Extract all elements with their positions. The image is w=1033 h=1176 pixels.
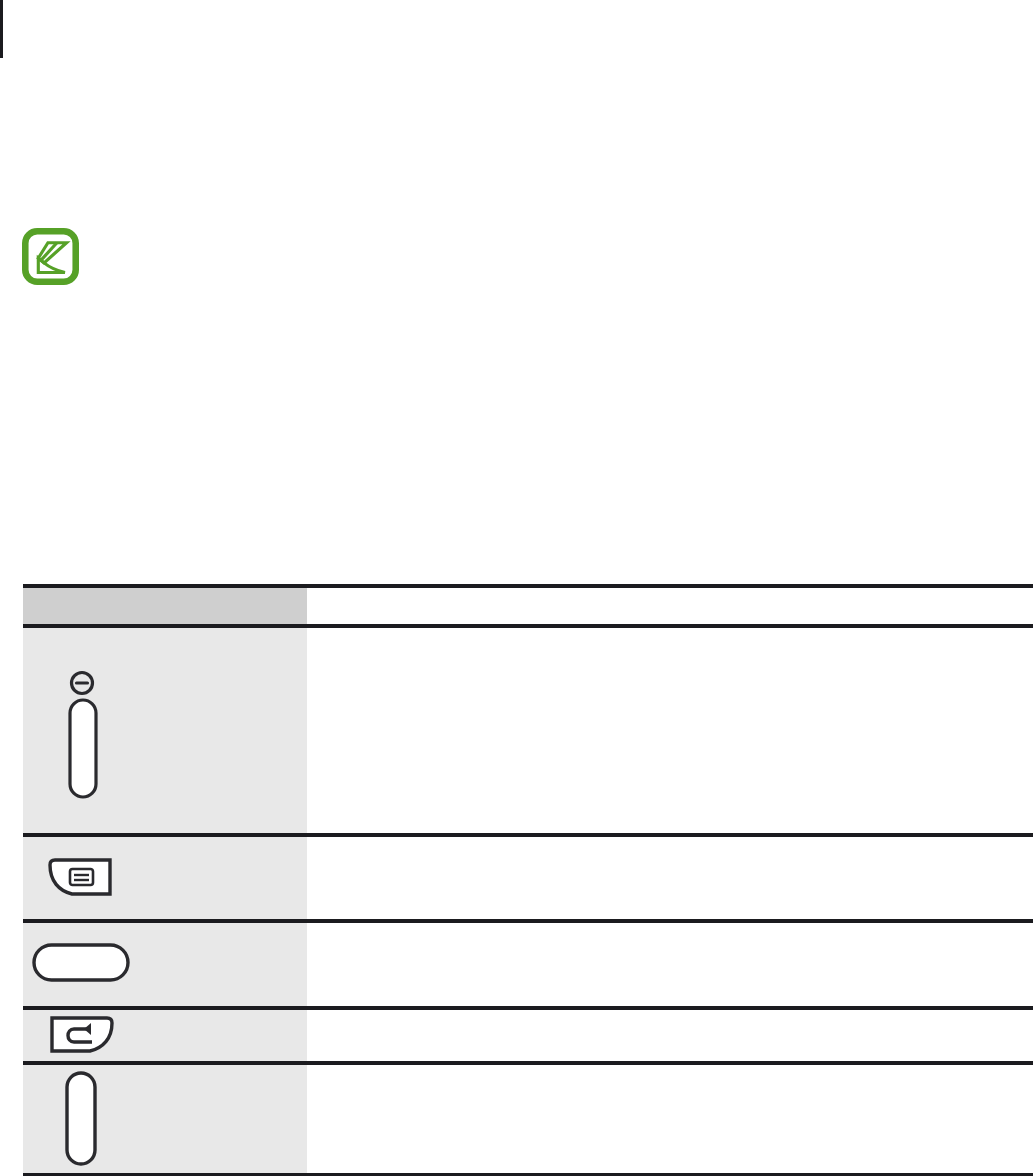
button[interactable]: Power key [23,1065,307,1173]
button[interactable]: Note [22,228,79,285]
button[interactable]: Home key [23,923,307,1006]
button[interactable]: Back key [23,1010,307,1061]
button[interactable]: Recents key [23,837,307,919]
button[interactable]: Volume key [23,628,307,833]
